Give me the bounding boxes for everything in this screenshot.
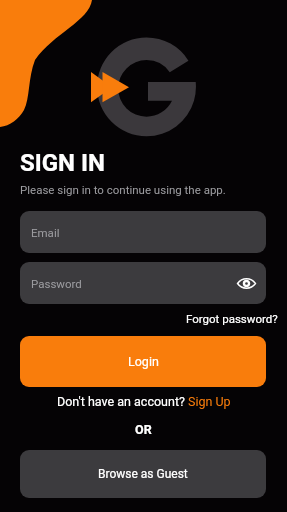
button[interactable]: Show password	[232, 269, 260, 297]
staticText: Browse as Guest	[98, 467, 188, 481]
button[interactable]: Don't have an account? Sign Up	[57, 394, 231, 409]
button[interactable]: Email	[20, 211, 266, 253]
staticText: SIGN IN	[20, 149, 106, 177]
button[interactable]: Password	[20, 262, 266, 304]
button[interactable]: Login	[20, 336, 266, 387]
staticText: Login	[128, 354, 159, 369]
button[interactable]: Browse as Guest	[20, 450, 266, 498]
staticText: Please sign in to continue using the app…	[20, 183, 226, 196]
staticText: Password	[31, 277, 82, 290]
button[interactable]: Forgot password?	[180, 310, 284, 327]
staticText: Email	[31, 226, 60, 239]
staticText: Forgot password?	[186, 312, 278, 325]
staticText: OR	[135, 422, 152, 437]
